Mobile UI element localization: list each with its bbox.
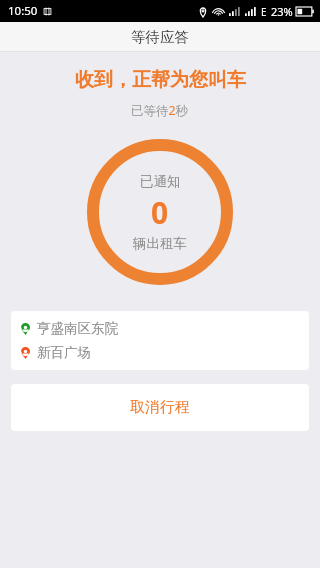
staticText: 0: [151, 192, 169, 233]
staticText: E: [261, 5, 267, 19]
staticText: 已通知: [140, 173, 181, 190]
staticText: 取消行程: [130, 398, 190, 417]
staticText: 收到，正帮为您叫车: [75, 68, 246, 92]
staticText: 23%: [271, 4, 293, 19]
staticText: 已等待2秒: [131, 102, 189, 119]
staticText: 辆出租车: [133, 235, 187, 252]
staticText: 等待应答: [131, 28, 189, 46]
button[interactable]: 亨盛南区东院: [11, 311, 309, 370]
staticText: 10:50: [8, 3, 38, 19]
staticText: 亨盛南区东院: [37, 320, 118, 337]
staticText: 新百广场: [37, 344, 91, 361]
button[interactable]: 取消行程: [11, 384, 309, 431]
